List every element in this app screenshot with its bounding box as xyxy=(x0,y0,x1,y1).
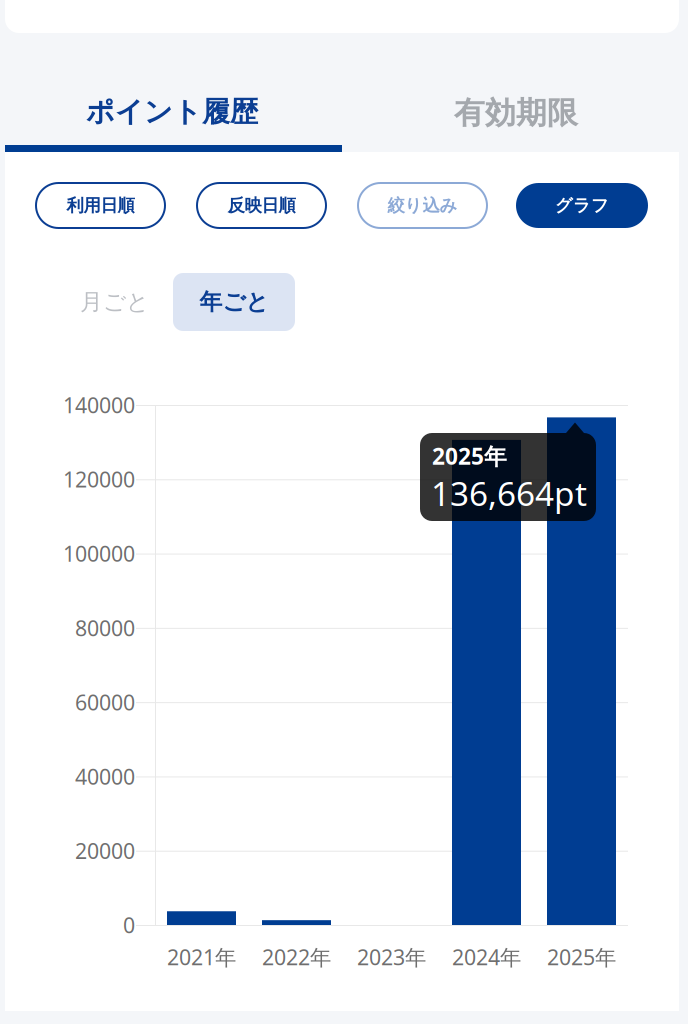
staticText: 120000 xyxy=(63,465,135,493)
staticText: 100000 xyxy=(63,539,135,568)
button[interactable]: 絞り込み xyxy=(358,183,487,228)
staticText: 136,664pt xyxy=(431,471,587,515)
button[interactable]: 月ごと xyxy=(56,273,173,331)
staticText: 2022年 xyxy=(262,943,331,971)
button[interactable]: 利用日順 xyxy=(36,183,165,228)
button[interactable]: グラフ xyxy=(516,183,648,228)
staticText: 2021年 xyxy=(167,943,236,971)
staticText: 2023年 xyxy=(357,943,426,971)
staticText: 年ごと xyxy=(199,288,268,316)
staticText: ポイント履歴 xyxy=(86,95,258,129)
button[interactable]: 反映日順 xyxy=(197,183,326,228)
staticText: 月ごと xyxy=(80,288,149,316)
staticText: 60000 xyxy=(75,688,135,716)
staticText: 利用日順 xyxy=(66,195,134,216)
staticText: 40000 xyxy=(75,762,135,791)
staticText: 2024年 xyxy=(452,943,521,971)
button[interactable]: ポイント履歴 xyxy=(0,66,344,158)
staticText: 80000 xyxy=(75,614,135,642)
staticText: 20000 xyxy=(75,836,135,865)
button[interactable]: 年ごと xyxy=(173,273,295,331)
staticText: 有効期限 xyxy=(454,94,578,132)
staticText: 絞り込み xyxy=(387,195,457,216)
staticText: グラフ xyxy=(555,195,609,216)
staticText: 0 xyxy=(123,911,135,939)
button[interactable]: 有効期限 xyxy=(344,67,688,159)
staticText: 2025年 xyxy=(432,441,507,471)
staticText: 反映日順 xyxy=(227,195,295,216)
staticText: 140000 xyxy=(63,391,135,419)
staticText: 2025年 xyxy=(547,943,616,971)
